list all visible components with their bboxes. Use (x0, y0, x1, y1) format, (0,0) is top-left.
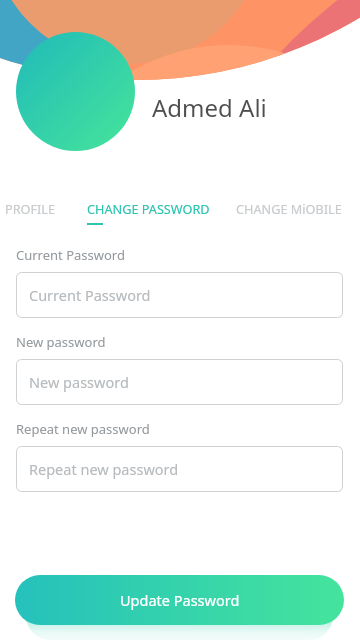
button[interactable]: Current Password (16, 272, 343, 318)
staticText: Repeat new password (29, 459, 179, 479)
staticText: New password (16, 333, 106, 351)
staticText: Update Password (120, 590, 240, 610)
staticText: New password (29, 372, 129, 392)
staticText: PROFILE (5, 200, 56, 217)
button[interactable]: CHANGE MiOBILE (236, 200, 342, 217)
button[interactable]: Update Password (15, 575, 344, 625)
staticText: Current Password (16, 246, 125, 264)
staticText: Admed Ali (152, 91, 267, 124)
button[interactable]: New password (16, 359, 343, 405)
staticText: CHANGE PASSWORD (87, 200, 210, 217)
button[interactable]: PROFILE (5, 200, 56, 217)
button[interactable]: CHANGE PASSWORD (87, 200, 210, 225)
staticText: Current Password (29, 285, 151, 305)
staticText: Repeat new password (16, 420, 150, 438)
button[interactable]: Repeat new password (16, 446, 343, 492)
staticText: CHANGE MiOBILE (236, 200, 342, 217)
